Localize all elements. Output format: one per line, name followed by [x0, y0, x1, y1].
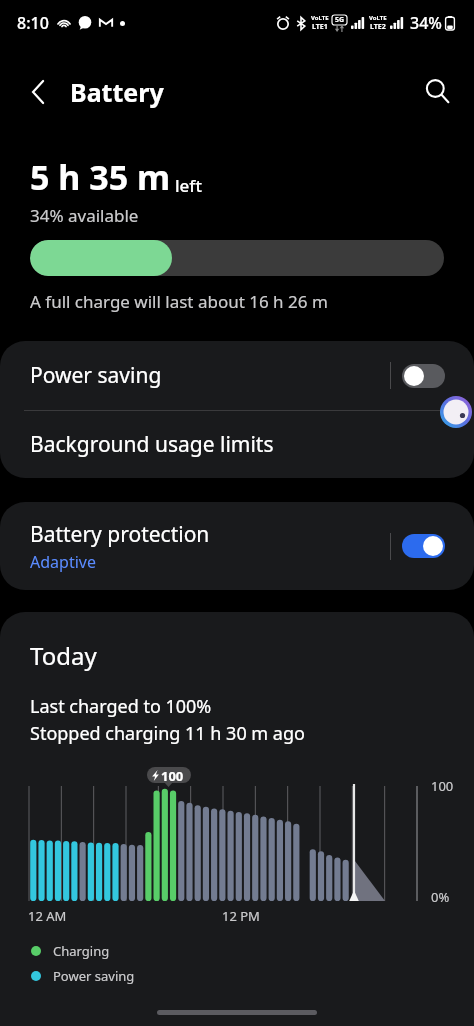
staticText: 12 PM	[222, 907, 260, 925]
staticText: 8:10	[17, 12, 49, 34]
staticText: Adaptive	[30, 551, 96, 573]
staticText: Stopped charging 11 h 30 m ago	[30, 721, 305, 746]
staticText: Battery	[70, 75, 164, 109]
staticText: VoLTE	[311, 14, 329, 22]
staticText: Power saving	[30, 361, 390, 390]
button[interactable]: Background usage limits	[0, 411, 474, 478]
staticText: 100	[161, 767, 184, 783]
button[interactable]: Search	[414, 68, 462, 116]
staticText: LTE2	[370, 22, 386, 32]
button[interactable]: Power saving	[0, 341, 474, 410]
staticText: Charging	[53, 942, 110, 960]
staticText: 34%	[410, 12, 442, 34]
staticText: Last charged to 100%	[30, 694, 212, 719]
staticText: 100	[431, 777, 454, 795]
staticText: VoLTE	[369, 14, 387, 22]
staticText: A full charge will last about 16 h 26 m	[30, 290, 328, 313]
staticText: 12 AM	[28, 907, 67, 925]
staticText: 5G	[335, 15, 345, 25]
staticText: 34% available	[30, 204, 139, 227]
staticText: Today	[30, 639, 97, 672]
staticText: LTE1	[312, 22, 328, 32]
staticText: Power saving	[53, 967, 135, 985]
staticText: left	[175, 174, 202, 197]
staticText: 5 h 35 m	[30, 154, 171, 200]
staticText: Battery protection	[30, 520, 210, 549]
staticText: 0%	[431, 888, 450, 906]
button[interactable]: Battery protection	[0, 502, 474, 590]
button[interactable]: Navigate up	[14, 72, 54, 112]
staticText: Background usage limits	[30, 430, 274, 459]
